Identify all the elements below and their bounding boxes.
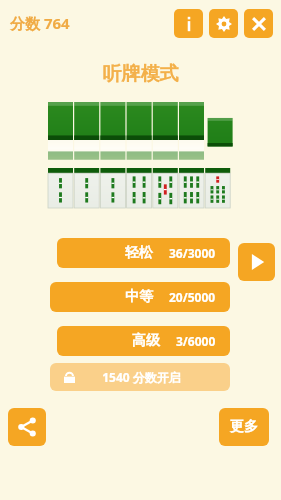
button[interactable]: 高级 bbox=[57, 326, 230, 356]
staticText: 3/6000 bbox=[176, 333, 216, 349]
button[interactable]: 更多 bbox=[219, 408, 269, 446]
button[interactable]: 1540 分数开启 bbox=[50, 363, 230, 391]
button[interactable]: 中等 bbox=[50, 282, 230, 312]
staticText: 1540 分数开启 bbox=[75, 369, 208, 385]
button[interactable]: Share bbox=[8, 408, 46, 446]
staticText: 听牌模式 bbox=[0, 62, 281, 86]
staticText: 36/3000 bbox=[169, 245, 216, 261]
staticText: 中等 bbox=[125, 288, 153, 306]
button[interactable]: 轻松 bbox=[57, 238, 230, 268]
staticText: 20/5000 bbox=[169, 289, 216, 305]
staticText: 分数 764 bbox=[10, 13, 70, 33]
staticText: 更多 bbox=[230, 418, 258, 436]
button[interactable]: Info bbox=[174, 9, 203, 38]
button[interactable]: Close bbox=[244, 9, 273, 38]
staticText: 轻松 bbox=[125, 244, 153, 262]
staticText: 高级 bbox=[132, 332, 160, 350]
button[interactable]: Settings bbox=[209, 9, 238, 38]
button[interactable]: Play bbox=[238, 243, 275, 281]
